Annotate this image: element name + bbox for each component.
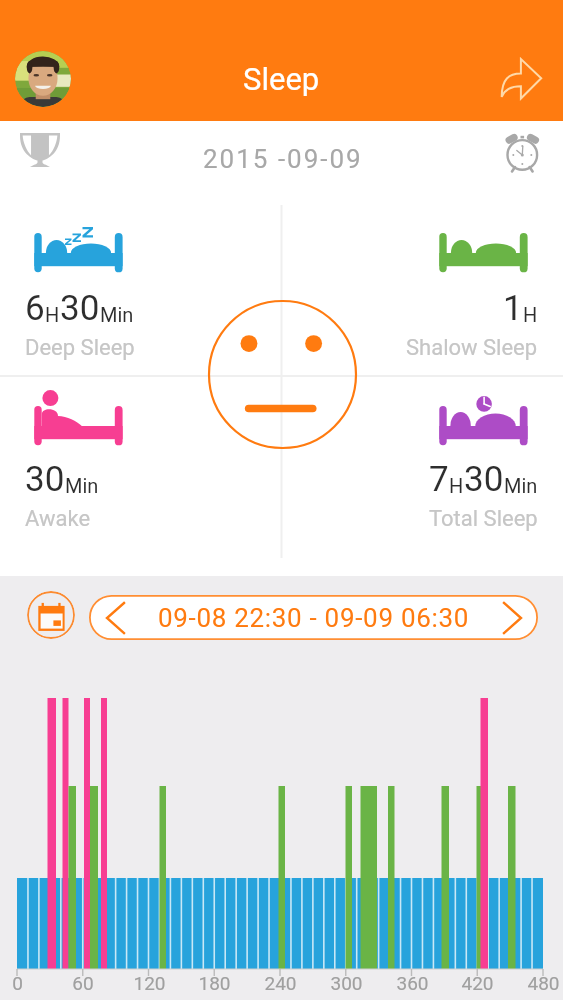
staticText: 6 — [25, 288, 45, 329]
staticText: 120 — [133, 972, 166, 994]
button[interactable]: Calendar — [27, 591, 75, 639]
staticText: 30 — [25, 459, 65, 500]
staticText: 7 — [429, 459, 449, 500]
button[interactable]: Profile — [15, 51, 71, 107]
staticText: H — [523, 303, 538, 326]
staticText: Min — [65, 474, 99, 497]
staticText: 180 — [198, 972, 231, 994]
staticText: Total Sleep — [429, 506, 538, 532]
button[interactable]: Achievements — [14, 128, 66, 180]
staticText: H — [449, 474, 464, 497]
staticText: Awake — [25, 506, 91, 532]
staticText: 480 — [527, 972, 560, 994]
staticText: Shalow Sleep — [406, 335, 538, 361]
staticText: 360 — [396, 972, 429, 994]
staticText: 09-08 22:30 - 09-09 06:30 — [141, 603, 486, 633]
staticText: 240 — [264, 972, 297, 994]
button[interactable]: 09-08 22:30 - 09-09 06:30 — [89, 595, 538, 640]
staticText: Sleep — [243, 61, 320, 97]
staticText: 60 — [72, 972, 94, 994]
staticText: 2015 -09-09 — [203, 144, 363, 174]
staticText: Min — [504, 474, 538, 497]
staticText: Min — [100, 303, 134, 326]
staticText: 300 — [330, 972, 363, 994]
button[interactable]: Alarm — [499, 130, 547, 178]
staticText: 30 — [464, 459, 504, 500]
staticText: 420 — [461, 972, 494, 994]
staticText: Deep Sleep — [25, 335, 135, 361]
staticText: H — [45, 303, 60, 326]
staticText: 30 — [60, 288, 100, 329]
staticText: 1 — [503, 288, 523, 329]
button[interactable]: Share — [497, 55, 545, 103]
staticText: 0 — [12, 972, 23, 994]
